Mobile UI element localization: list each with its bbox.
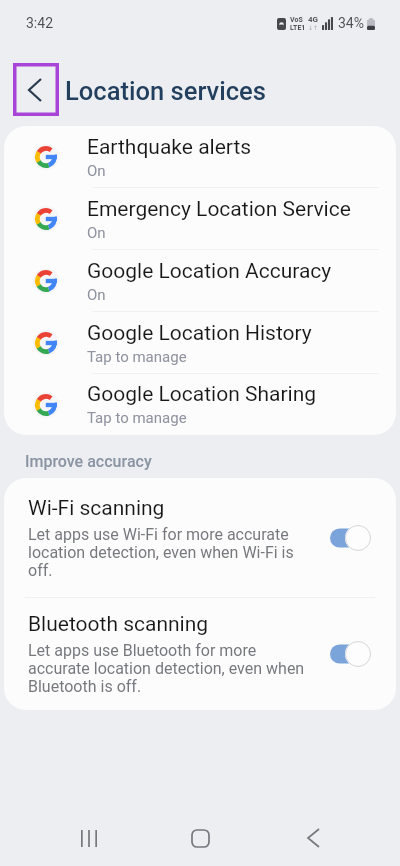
button[interactable]: Emergency Location Service — [4, 188, 396, 250]
staticText: Wi-Fi scanning — [28, 496, 165, 521]
staticText: ↓↑ — [308, 24, 319, 31]
button[interactable]: Back — [13, 63, 59, 116]
button[interactable]: Recent apps — [54, 814, 124, 862]
button[interactable]: Home — [165, 814, 236, 862]
staticText: Google Location Sharing — [87, 382, 317, 407]
staticText: Earthquake alerts — [87, 135, 252, 160]
button[interactable]: Google Location Accuracy — [4, 250, 396, 312]
staticText: Bluetooth scanning — [28, 612, 209, 637]
button[interactable]: Earthquake alerts — [4, 126, 396, 188]
staticText: On — [87, 162, 106, 180]
staticText: 4G — [308, 15, 319, 24]
staticText: Emergency Location Service — [87, 197, 351, 222]
button[interactable]: Bluetooth scanning — [4, 598, 396, 710]
staticText: VoS — [290, 16, 303, 24]
staticText: Google Location History — [87, 321, 312, 346]
staticText: 34% — [338, 15, 364, 31]
staticText: 3:42 — [26, 15, 53, 31]
button[interactable]: Wi-Fi scanning — [4, 478, 396, 597]
staticText: Let apps use Bluetooth for more accurate… — [28, 641, 313, 696]
button[interactable]: Back — [278, 814, 348, 862]
staticText: On — [87, 224, 106, 242]
button[interactable]: Toggle — [330, 641, 371, 667]
button[interactable]: Google Location Sharing — [4, 374, 396, 435]
staticText: Improve accuracy — [25, 452, 152, 471]
staticText: Tap to manage — [87, 409, 187, 427]
staticText: LTE1 — [290, 24, 306, 32]
staticText: Location services — [65, 76, 266, 106]
button[interactable]: Google Location History — [4, 312, 396, 374]
staticText: On — [87, 286, 106, 304]
staticText: Google Location Accuracy — [87, 259, 332, 284]
button[interactable]: Toggle — [330, 525, 371, 551]
staticText: Tap to manage — [87, 348, 187, 366]
staticText: Let apps use Wi-Fi for more accurate loc… — [28, 525, 313, 580]
